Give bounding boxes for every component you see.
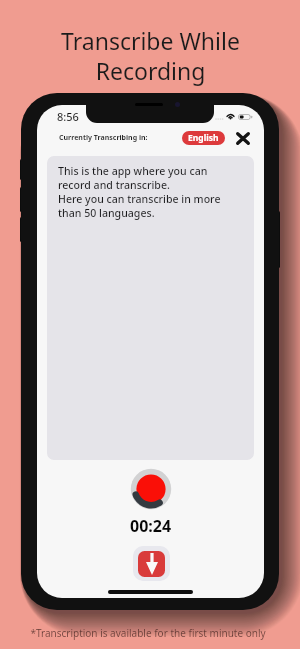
- button[interactable]: Close: [231, 126, 255, 150]
- button[interactable]: Stop recording: [129, 467, 173, 511]
- button[interactable]: English: [182, 131, 225, 145]
- staticText: Transcribe While Recording: [61, 25, 240, 87]
- staticText: 00:24: [130, 515, 172, 537]
- button[interactable]: Download transcription: [133, 546, 170, 581]
- staticText: 8:56: [57, 109, 79, 124]
- staticText: This is the app where you can record and…: [58, 164, 221, 220]
- staticText: *Transcription is available for the firs…: [30, 626, 266, 640]
- staticText: Currently Transcribing in:: [59, 133, 148, 143]
- staticText: English: [188, 132, 219, 144]
- button[interactable]: This is the app where you can record and…: [47, 156, 254, 460]
